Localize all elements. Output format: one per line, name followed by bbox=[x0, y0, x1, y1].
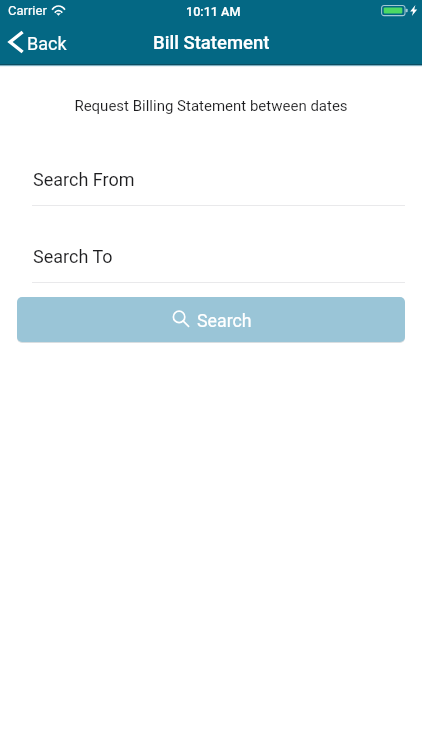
button[interactable]: Back bbox=[2, 25, 74, 59]
staticText: Back bbox=[27, 33, 67, 54]
staticText: Search bbox=[197, 310, 252, 331]
staticText: Bill Statement bbox=[153, 32, 270, 54]
staticText: 10:11 AM bbox=[186, 4, 241, 19]
staticText: Search To bbox=[33, 246, 113, 267]
button[interactable]: Search bbox=[17, 297, 405, 342]
button[interactable]: Search From bbox=[32, 160, 405, 206]
staticText: Search From bbox=[33, 169, 135, 190]
staticText: Carrier bbox=[8, 3, 47, 18]
other: Wi-Fi bbox=[51, 5, 67, 16]
button[interactable]: Search To bbox=[32, 237, 405, 283]
other: Search bbox=[172, 310, 190, 328]
other: Battery charging bbox=[381, 4, 418, 17]
staticText: Request Billing Statement between dates bbox=[0, 97, 422, 115]
